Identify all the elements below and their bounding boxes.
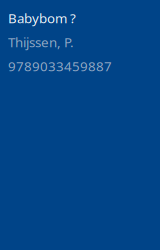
staticText: 9789033459887 <box>8 57 112 75</box>
staticText: Thijssen, P. <box>8 33 74 51</box>
button[interactable]: Babybom ? <box>0 0 160 250</box>
staticText: Babybom ? <box>8 9 76 27</box>
